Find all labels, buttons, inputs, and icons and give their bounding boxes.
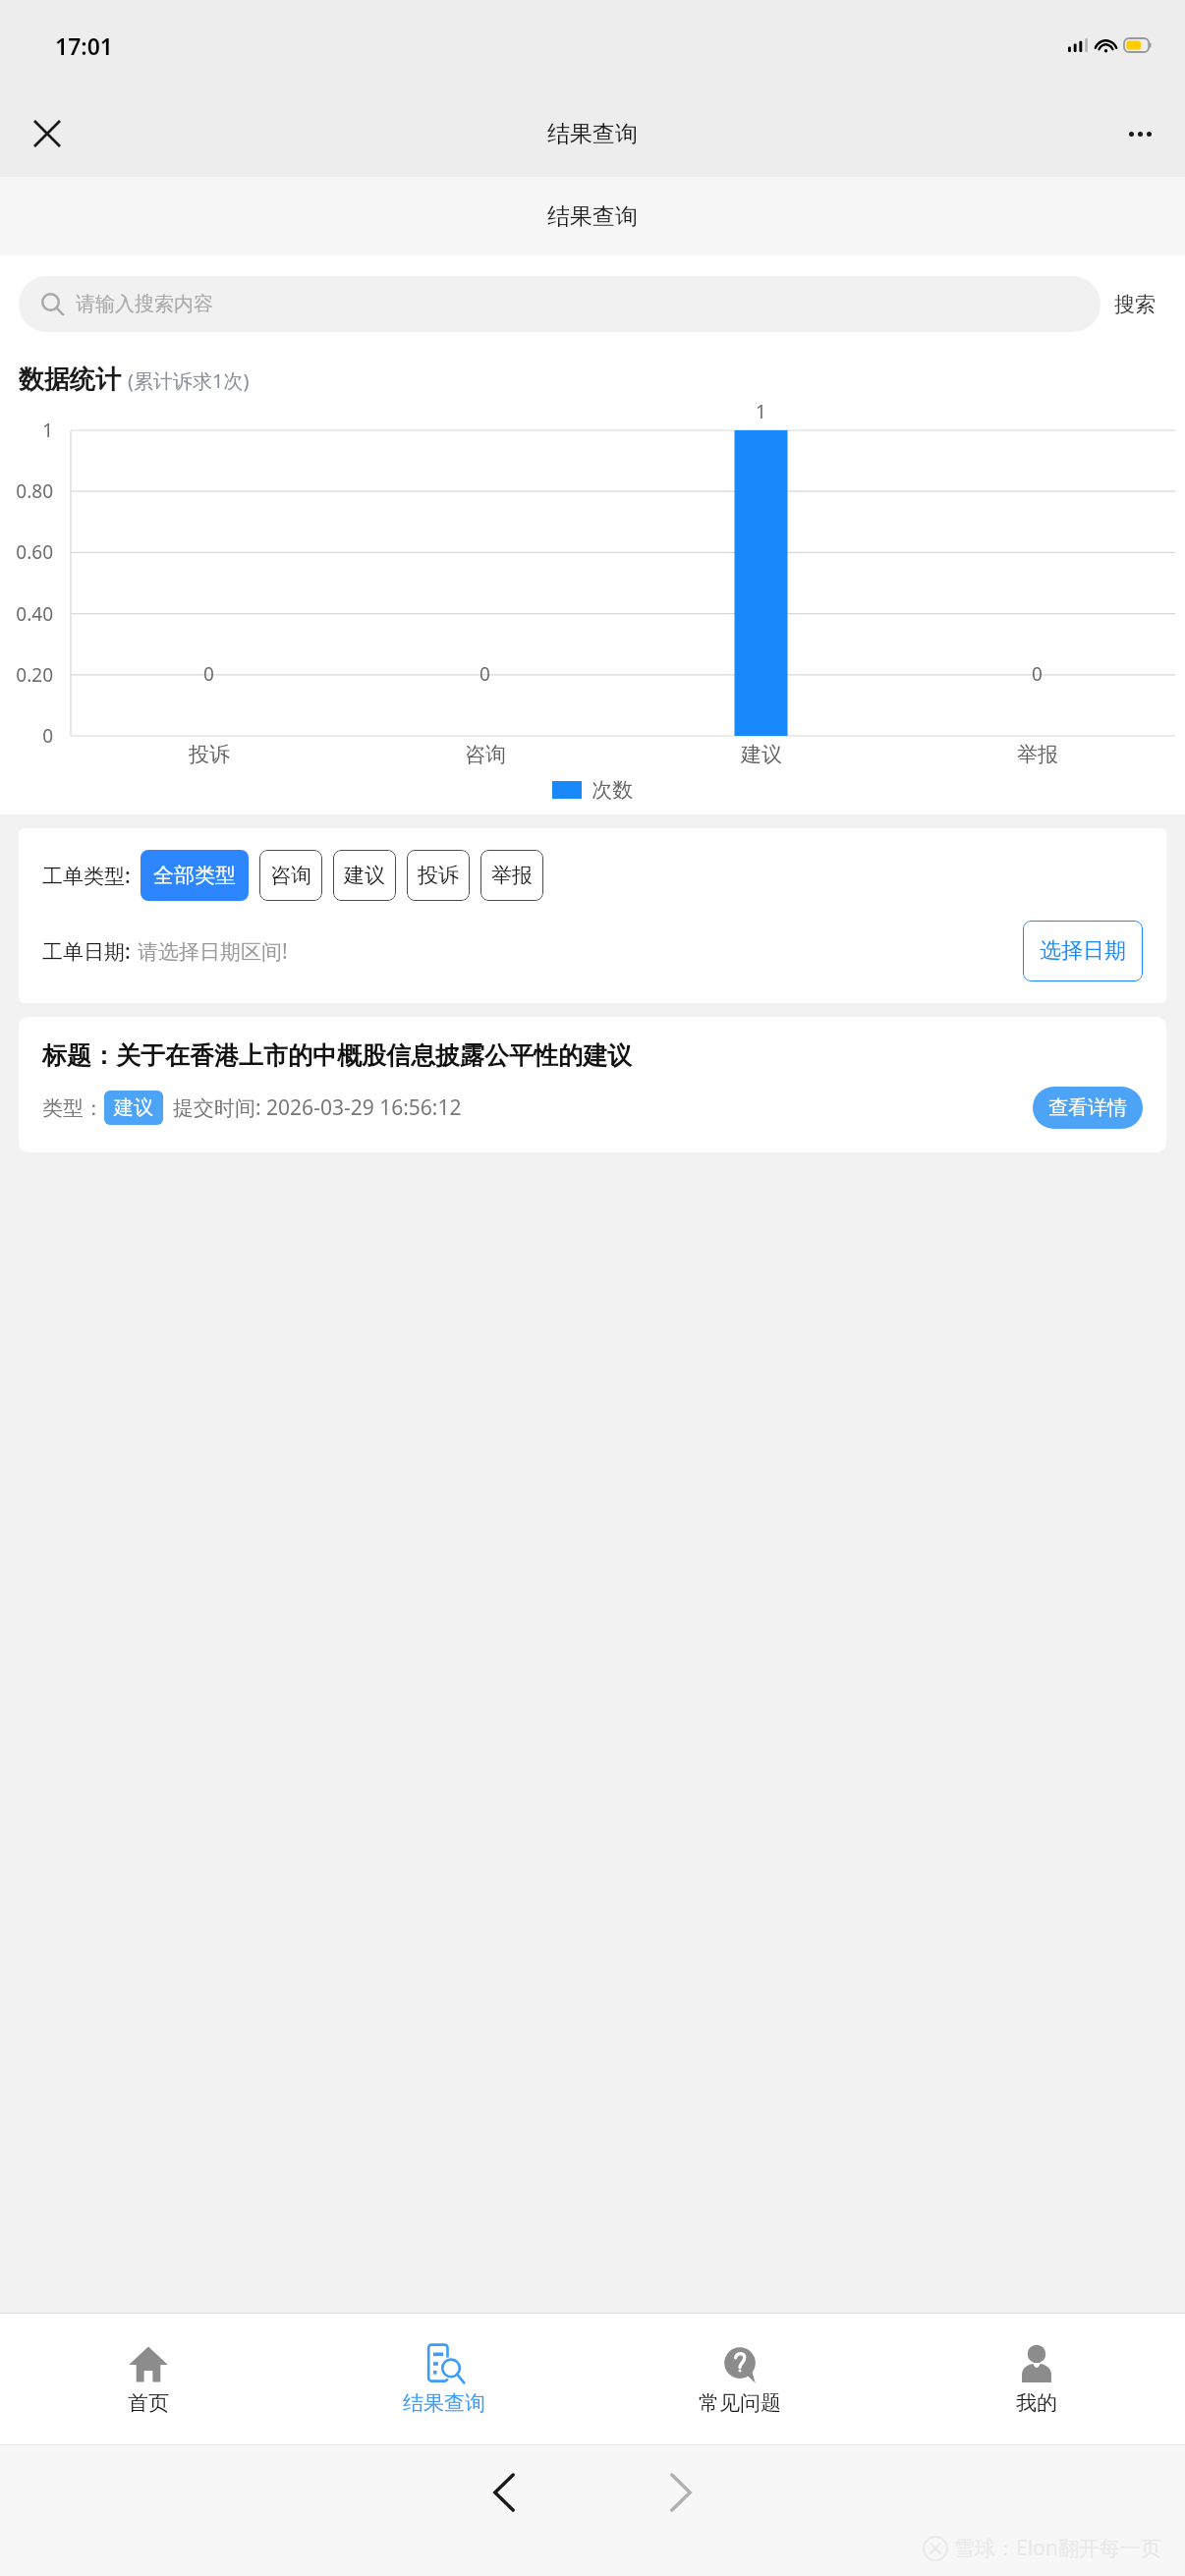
button[interactable]: 举报 (480, 850, 543, 901)
staticText: 1 (0, 418, 53, 443)
staticText: 请输入搜索内容 (76, 292, 213, 316)
staticText: 结果查询 (547, 120, 638, 148)
staticText: 0 (1032, 661, 1043, 687)
staticText: 结果查询 (547, 202, 638, 231)
staticText: (累计诉求1次) (128, 367, 250, 394)
staticText: 提交时间: 2026-03-29 16:56:12 (173, 1093, 462, 1122)
staticText: 0 (480, 661, 490, 687)
button[interactable]: 标题：关于在香港上市的中概股信息披露公平性的建议 (19, 1017, 1166, 1152)
button[interactable]: Close (22, 108, 73, 159)
staticText: 选择日期 (1040, 937, 1126, 965)
staticText: 数据统计 (19, 364, 121, 396)
staticText: 全部类型 (153, 863, 236, 888)
button[interactable]: 我的 (888, 2314, 1185, 2444)
button[interactable]: Back (475, 2463, 534, 2522)
button[interactable]: 结果查询 (296, 2314, 592, 2444)
staticText: 类型： (42, 1095, 104, 1121)
staticText: 查看详情 (1048, 1095, 1127, 1120)
button[interactable]: 建议 (333, 850, 396, 901)
button[interactable]: 常见问题 (592, 2314, 888, 2444)
staticText: 咨询 (465, 742, 506, 767)
staticText: 工单日期: (42, 937, 131, 966)
staticText: 搜索 (1114, 292, 1156, 317)
staticText: 建议 (741, 742, 782, 767)
button[interactable]: 选择日期 (1023, 921, 1143, 981)
staticText: 0.20 (0, 662, 53, 688)
button[interactable]: 请输入搜索内容 (19, 276, 1100, 332)
staticText: 建议 (114, 1095, 153, 1120)
staticText: 次数 (592, 777, 633, 803)
staticText: 1 (756, 399, 766, 424)
staticText: 投诉 (418, 863, 459, 888)
staticText: 0.40 (0, 601, 53, 627)
button[interactable]: 首页 (0, 2314, 296, 2444)
staticText: 0 (203, 661, 214, 687)
staticText: 首页 (128, 2390, 169, 2416)
staticText: 0 (0, 723, 53, 749)
staticText: 咨询 (270, 863, 311, 888)
staticText: 我的 (1016, 2390, 1057, 2416)
button[interactable]: 全部类型 (141, 850, 249, 901)
staticText: 雪球：Elon翻开每一页 (954, 2534, 1161, 2562)
staticText: 0.60 (0, 539, 53, 565)
staticText: 17:01 (55, 30, 113, 61)
staticText: 结果查询 (403, 2390, 485, 2416)
staticText: 举报 (491, 863, 533, 888)
staticText: 0.80 (0, 478, 53, 504)
button[interactable]: Forward (651, 2463, 710, 2522)
staticText: 请选择日期区间! (138, 937, 288, 966)
staticText: 举报 (1017, 742, 1058, 767)
button[interactable]: 搜索 (1100, 286, 1169, 323)
button[interactable]: 咨询 (259, 850, 322, 901)
staticText: 投诉 (189, 742, 230, 767)
staticText: 标题：关于在香港上市的中概股信息披露公平性的建议 (42, 1040, 632, 1071)
staticText: 工单类型: (42, 862, 131, 890)
staticText: 常见问题 (699, 2390, 781, 2416)
button[interactable]: More options (1114, 108, 1165, 159)
staticText: 建议 (344, 863, 385, 888)
button[interactable]: 查看详情 (1033, 1087, 1143, 1129)
button[interactable]: 投诉 (407, 850, 470, 901)
